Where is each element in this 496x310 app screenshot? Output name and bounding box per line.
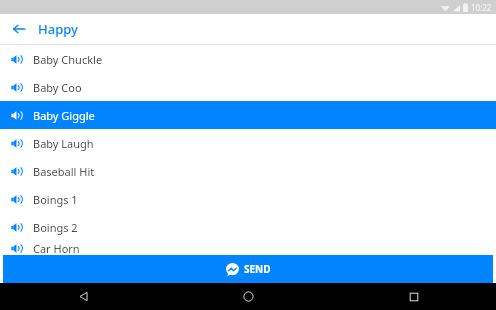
staticText: Baby Giggle [33, 108, 95, 123]
staticText: Baseball Hit [33, 164, 95, 179]
button[interactable]: Baseball Hit [0, 157, 496, 185]
button[interactable]: Baby Coo [0, 73, 496, 101]
staticText: Baby Coo [33, 80, 82, 95]
staticText: Happy [38, 20, 78, 38]
staticText: Boings 1 [33, 192, 78, 207]
staticText: Car Horn [33, 241, 80, 255]
button[interactable]: Boings 2 [0, 213, 496, 241]
button[interactable]: Home [166, 283, 331, 310]
staticText: 10:22 [471, 2, 492, 13]
button[interactable]: Boings 1 [0, 185, 496, 213]
staticText: Baby Laugh [33, 136, 94, 151]
button[interactable]: Car Horn [0, 241, 496, 255]
button[interactable]: Recent apps [331, 283, 496, 310]
staticText: Baby Chuckle [33, 52, 103, 67]
button[interactable]: Back [0, 283, 166, 310]
button[interactable]: SEND [3, 255, 493, 283]
staticText: Boings 2 [33, 220, 78, 235]
button[interactable]: Baby Giggle [0, 101, 496, 129]
button[interactable]: Baby Laugh [0, 129, 496, 157]
staticText: SEND [244, 262, 271, 276]
button[interactable]: Baby Chuckle [0, 45, 496, 73]
button[interactable]: Back [0, 14, 38, 44]
